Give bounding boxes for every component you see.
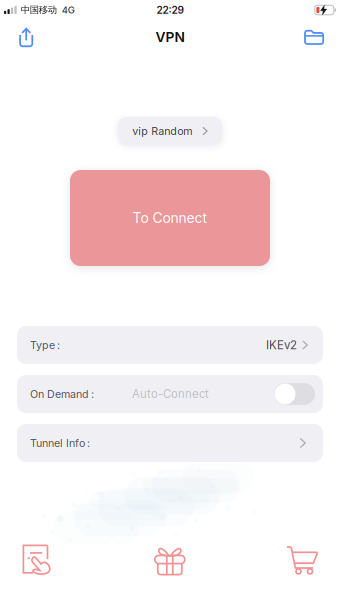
staticText: 中国移动	[21, 4, 57, 16]
button[interactable]: Type :	[17, 326, 323, 364]
staticText: Type :	[30, 338, 60, 351]
staticText: IKEv2	[266, 338, 297, 352]
button[interactable]: Sign	[0, 536, 76, 584]
button[interactable]: Share	[4, 20, 48, 54]
staticText: 22:29	[156, 4, 183, 16]
button[interactable]: Store	[264, 536, 340, 584]
staticText: To Connect	[132, 210, 207, 226]
button[interactable]: On Demand :	[17, 375, 323, 413]
staticText: On Demand :	[30, 387, 94, 400]
button[interactable]: vip Random	[117, 117, 222, 145]
staticText: vip Random	[132, 124, 192, 137]
button[interactable]: Rewards	[132, 536, 208, 584]
button[interactable]: Tunnel Info :	[17, 424, 323, 462]
staticText: Tunnel Info :	[30, 436, 90, 449]
button[interactable]: Saved configurations	[292, 20, 336, 54]
button[interactable]: To Connect	[70, 170, 270, 266]
staticText: 4G	[62, 4, 75, 16]
staticText: VPN	[155, 29, 184, 45]
staticText: Auto-Connect	[132, 387, 209, 401]
